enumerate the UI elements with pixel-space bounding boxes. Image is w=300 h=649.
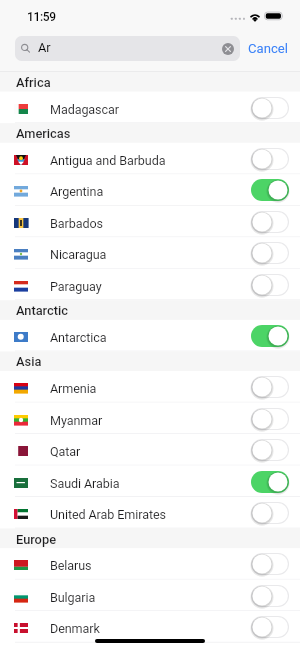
staticText: Armenia — [50, 381, 97, 396]
button[interactable]: Ar — [15, 36, 240, 61]
button[interactable]: Disabled — [251, 148, 289, 170]
staticText: Antigua and Barbuda — [50, 153, 166, 168]
staticText: Qatar — [50, 444, 81, 459]
staticText: Nicaragua — [50, 247, 107, 262]
button[interactable]: Disabled — [251, 211, 289, 233]
button[interactable]: Saudi Arabia — [0, 466, 300, 497]
staticText: Saudi Arabia — [50, 476, 120, 491]
button[interactable]: Enabled — [251, 325, 289, 347]
button[interactable]: Nicaragua — [0, 237, 300, 268]
button[interactable]: Qatar — [0, 434, 300, 465]
staticText: Europe — [16, 532, 57, 547]
staticText: United Arab Emirates — [50, 507, 166, 522]
button[interactable]: Enabled — [251, 471, 289, 493]
staticText: Americas — [16, 126, 71, 141]
staticText: Antarctica — [50, 330, 107, 345]
button[interactable]: Disabled — [251, 585, 289, 607]
staticText: Africa — [16, 75, 51, 90]
button[interactable]: Disabled — [251, 502, 289, 524]
button[interactable]: Antarctica — [0, 320, 300, 351]
staticText: Bulgaria — [50, 590, 96, 605]
button[interactable]: Disabled — [251, 97, 289, 119]
staticText: Antarctic — [16, 303, 69, 318]
button[interactable]: Belarus — [0, 548, 300, 579]
button[interactable]: Disabled — [251, 376, 289, 398]
button[interactable]: Disabled — [251, 242, 289, 264]
staticText: Ar — [38, 40, 51, 55]
button[interactable]: Cancel — [240, 35, 300, 62]
staticText: Cancel — [248, 41, 288, 56]
button[interactable]: Madagascar — [0, 92, 300, 123]
staticText: 11:59 — [27, 10, 56, 24]
button[interactable]: Disabled — [251, 274, 289, 296]
button[interactable]: Bulgaria — [0, 580, 300, 611]
button[interactable]: Clear text — [218, 39, 237, 58]
button[interactable]: Argentina — [0, 174, 300, 205]
button[interactable]: Antigua and Barbuda — [0, 143, 300, 174]
button[interactable]: Disabled — [251, 408, 289, 430]
button[interactable]: Barbados — [0, 206, 300, 237]
staticText: Belarus — [50, 558, 92, 573]
staticText: Paraguay — [50, 279, 102, 294]
button[interactable]: Paraguay — [0, 269, 300, 300]
staticText: Barbados — [50, 216, 103, 231]
button[interactable]: Disabled — [251, 553, 289, 575]
button[interactable]: Enabled — [251, 179, 289, 201]
button[interactable]: Denmark — [0, 611, 300, 642]
button[interactable]: Myanmar — [0, 403, 300, 434]
button[interactable]: Disabled — [251, 616, 289, 638]
button[interactable]: United Arab Emirates — [0, 497, 300, 528]
staticText: Denmark — [50, 621, 100, 636]
staticText: Madagascar — [50, 102, 119, 117]
staticText: Asia — [16, 354, 42, 369]
button[interactable]: Disabled — [251, 439, 289, 461]
staticText: Myanmar — [50, 413, 103, 428]
button[interactable]: Armenia — [0, 371, 300, 402]
staticText: Argentina — [50, 184, 104, 199]
